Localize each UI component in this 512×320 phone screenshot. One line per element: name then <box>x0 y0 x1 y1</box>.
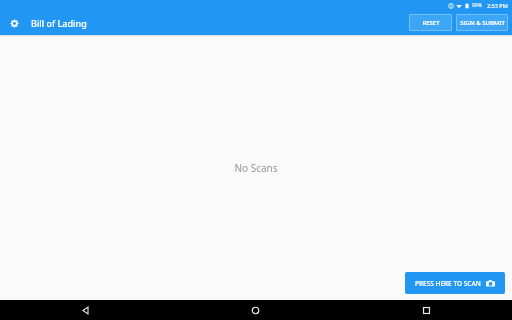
staticText: SIGN & SUBMIT <box>460 19 505 27</box>
staticText: No Scans <box>234 161 278 175</box>
staticText: PRESS HERE TO SCAN <box>415 279 481 288</box>
staticText: 2:53 PM <box>487 2 508 9</box>
button[interactable]: RESET <box>409 14 452 31</box>
staticText: Bill of Lading <box>31 17 87 29</box>
button[interactable]: SIGN & SUBMIT <box>456 14 508 31</box>
button[interactable]: Recents <box>341 300 512 320</box>
button[interactable]: PRESS HERE TO SCAN <box>405 272 505 294</box>
button[interactable]: Settings <box>5 14 23 32</box>
button[interactable]: Home <box>170 300 341 320</box>
staticText: 99% <box>472 2 482 9</box>
button[interactable]: Back <box>0 300 170 320</box>
staticText: RESET <box>422 19 440 27</box>
